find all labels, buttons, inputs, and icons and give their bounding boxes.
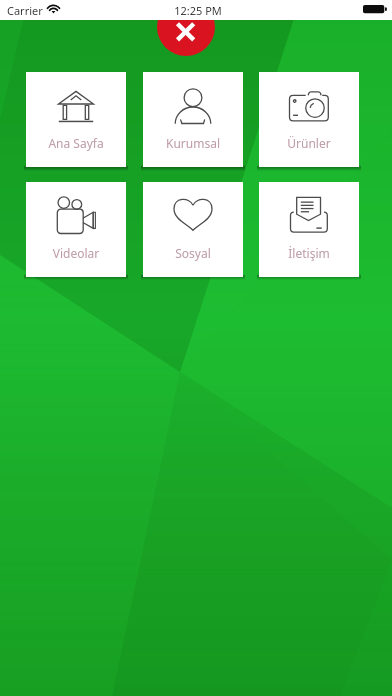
button[interactable]: Videolar: [26, 182, 126, 277]
button[interactable]: Ürünler: [259, 72, 359, 167]
staticText: Carrier: [7, 3, 43, 18]
staticText: Ana Sayfa: [26, 135, 126, 151]
button[interactable]: Ana Sayfa: [26, 72, 126, 167]
staticText: Kurumsal: [143, 135, 243, 151]
staticText: Ürünler: [259, 135, 359, 151]
staticText: İletişim: [259, 245, 359, 261]
button[interactable]: Sosyal: [143, 182, 243, 277]
button[interactable]: İletişim: [259, 182, 359, 277]
staticText: Videolar: [26, 245, 126, 261]
staticText: 12:25 PM: [174, 3, 222, 18]
button[interactable]: Kurumsal: [143, 72, 243, 167]
button[interactable]: Close menu: [157, 0, 215, 56]
staticText: Sosyal: [143, 245, 243, 261]
